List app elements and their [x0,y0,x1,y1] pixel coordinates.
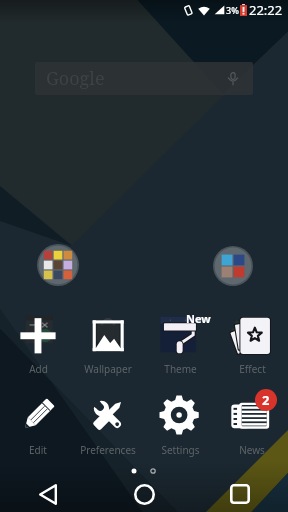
button[interactable]: Recent apps [192,476,288,512]
staticText: Add [29,362,48,376]
button[interactable]: Theme [145,312,215,374]
staticText: Google [46,66,105,91]
button[interactable]: Effect [217,312,287,374]
staticText: Theme [164,362,197,376]
staticText: New [186,311,211,326]
staticText: 3% [226,4,239,16]
button[interactable]: News [217,393,287,455]
button[interactable]: Home [96,476,192,512]
staticText: 22:22 [249,1,283,19]
staticText: Wallpaper [84,362,132,376]
button[interactable]: Google [35,62,253,95]
staticText: Effect [239,362,266,376]
button[interactable]: Edit [3,393,73,455]
button[interactable]: Wallpaper [73,312,143,374]
staticText: News [239,443,265,457]
staticText: 2 [262,391,270,409]
button[interactable]: Preferences [73,393,143,455]
button[interactable]: Add [3,312,73,374]
staticText: Settings [161,443,200,457]
staticText: Edit [29,443,47,457]
other: Voice search [226,72,240,86]
button[interactable]: Back [0,476,96,512]
staticText: Preferences [80,443,136,457]
button[interactable]: Games folder [37,244,79,286]
button[interactable]: Social folder [213,246,253,286]
button[interactable]: Settings [145,393,215,455]
